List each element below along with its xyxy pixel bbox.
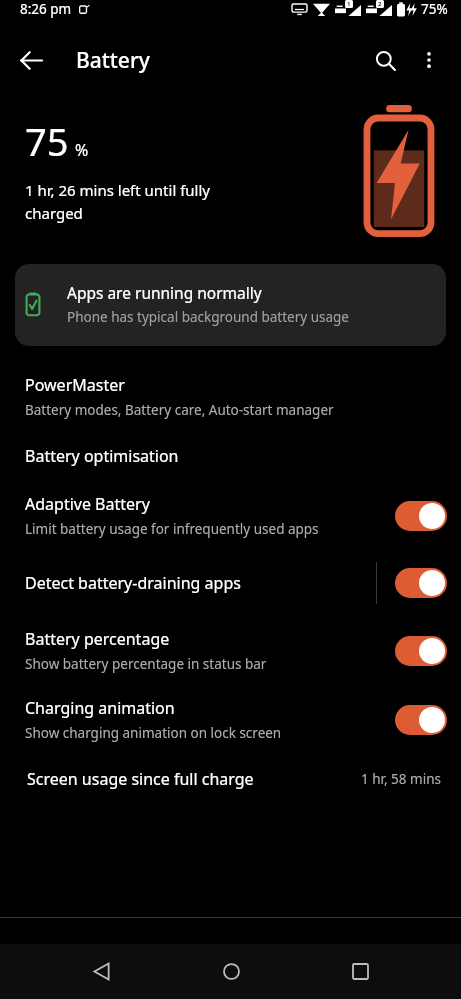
staticText: Charging animation [25, 697, 175, 719]
staticText: Show battery percentage in status bar [25, 655, 267, 673]
staticText: charged [25, 203, 83, 223]
button[interactable]: Detect battery-draining apps [0, 562, 461, 604]
staticText: Battery percentage [25, 628, 170, 650]
button[interactable]: Battery percentage [0, 628, 461, 673]
button[interactable]: Toggle [395, 705, 447, 735]
button[interactable]: Toggle [395, 636, 447, 666]
staticText: 75% [421, 0, 448, 18]
button[interactable]: Screen usage since full charge [0, 768, 461, 790]
button[interactable]: More options [407, 38, 451, 82]
button[interactable]: Charging animation [0, 697, 461, 742]
button[interactable]: PowerMaster [0, 372, 461, 421]
button[interactable]: Search [363, 38, 407, 82]
button[interactable]: Apps are running normally [15, 264, 446, 346]
button[interactable]: Toggle [395, 568, 447, 598]
staticText: 1 hr, 26 mins left until fully [25, 180, 210, 200]
staticText: Phone has typical background battery usa… [67, 308, 349, 326]
button[interactable]: Back [9, 38, 53, 82]
staticText: Battery modes, Battery care, Auto-start … [25, 401, 334, 419]
staticText: Limit battery usage for infrequently use… [25, 520, 319, 538]
staticText: 8:26 pm [20, 0, 72, 18]
staticText: Show charging animation on lock screen [25, 724, 282, 742]
button[interactable]: Back [73, 944, 129, 999]
staticText: 1 hr, 58 mins [361, 770, 441, 788]
staticText: % [75, 139, 89, 161]
staticText: PowerMaster [25, 374, 125, 396]
staticText: Adaptive Battery [25, 493, 150, 515]
staticText: Screen usage since full charge [27, 768, 254, 790]
button[interactable]: Battery optimisation [0, 443, 461, 469]
button[interactable]: Recent apps [332, 944, 388, 999]
staticText: Battery optimisation [25, 445, 179, 467]
button[interactable]: Home [203, 944, 259, 999]
staticText: Apps are running normally [67, 282, 262, 303]
staticText: 75 [25, 115, 69, 167]
staticText: 1 [347, 0, 351, 8]
button[interactable]: Adaptive Battery [0, 493, 461, 538]
button[interactable]: Toggle [395, 501, 447, 531]
staticText: 2 [378, 0, 382, 8]
staticText: Detect battery-draining apps [25, 572, 241, 594]
staticText: Battery [76, 46, 150, 75]
